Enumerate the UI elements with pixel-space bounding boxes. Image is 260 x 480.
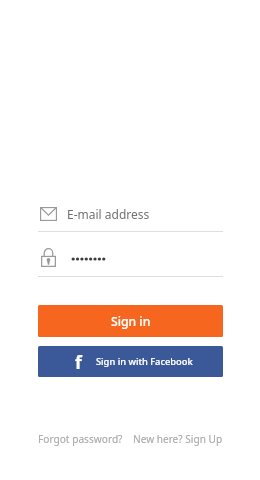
button[interactable]: Sign in [38, 305, 223, 337]
staticText: New here? Sign Up [133, 432, 223, 446]
staticText: Sign in with Facebook [96, 355, 193, 368]
button[interactable]: New here? Sign Up [133, 432, 223, 446]
button[interactable]: Forgot password? [38, 432, 123, 446]
staticText: f [75, 350, 82, 374]
button[interactable]: E-mail address [38, 199, 223, 231]
button[interactable]: f [38, 346, 223, 377]
staticText: Forgot password? [38, 432, 123, 446]
staticText: E-mail address [67, 206, 150, 222]
button[interactable]: Password [38, 244, 223, 276]
staticText: Sign in [111, 313, 151, 330]
